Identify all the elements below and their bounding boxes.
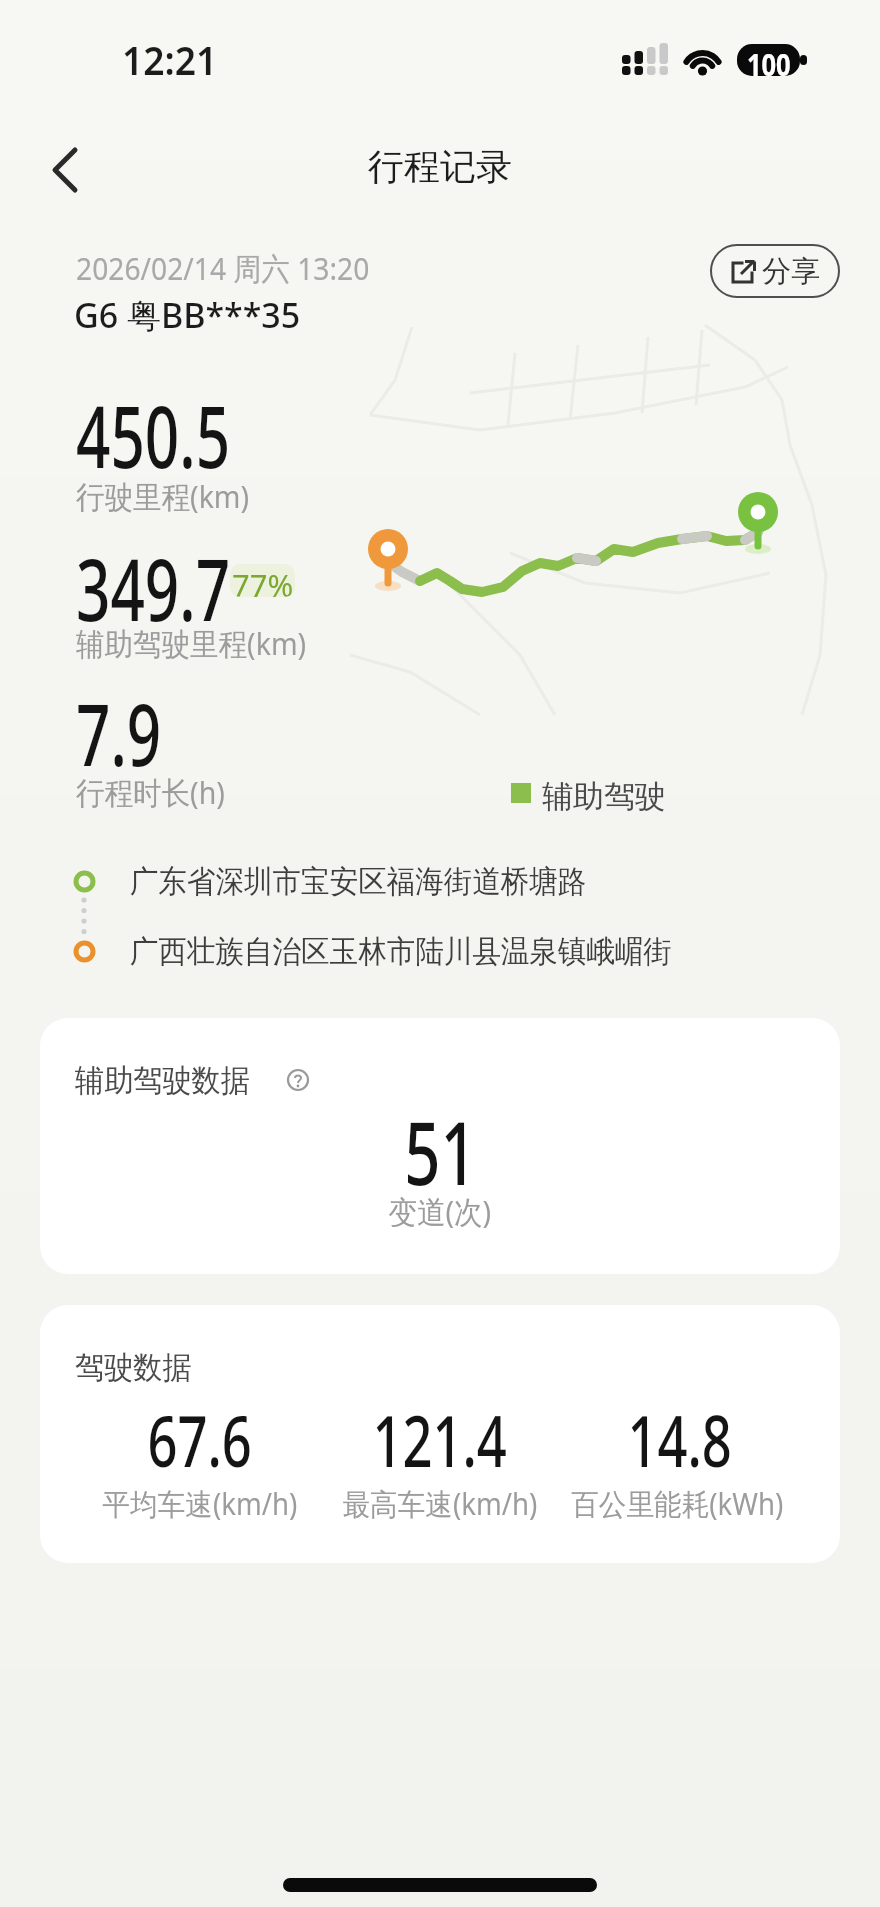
button[interactable]: 分享 — [710, 244, 840, 298]
staticText: 辅助驾驶 — [542, 777, 666, 816]
staticText: 2026/02/14 周六 13:20 — [76, 247, 370, 289]
staticText: 100 — [747, 44, 791, 76]
staticText: 辅助驾驶数据 — [75, 1061, 250, 1100]
staticText: 121.4 — [372, 1392, 507, 1487]
staticText: 变道(次) — [388, 1190, 491, 1232]
staticText: 广西壮族自治区玉林市陆川县温泉镇峨嵋街 — [130, 932, 672, 971]
staticText: 广东省深圳市宝安区福海街道桥塘路 — [130, 862, 586, 901]
staticText: 平均车速(km/h) — [102, 1483, 297, 1524]
staticText: 7.9 — [76, 674, 161, 791]
staticText: 百公里能耗(kWh) — [571, 1483, 784, 1524]
staticText: 驾驶数据 — [75, 1348, 192, 1387]
staticText: 67.6 — [147, 1392, 252, 1487]
staticText: G6 粤BB***35 — [74, 292, 301, 338]
staticText: 14.8 — [627, 1392, 732, 1487]
staticText: 分享 — [762, 253, 820, 290]
button[interactable]: 辅助驾驶数据 — [40, 1018, 840, 1274]
staticText: 349.7 — [76, 529, 231, 646]
staticText: 行程记录 — [368, 144, 512, 189]
staticText: 12:21 — [122, 32, 218, 86]
staticText: 最高车速(km/h) — [342, 1483, 537, 1524]
staticText: 450.5 — [76, 376, 231, 493]
staticText: 77% — [232, 564, 294, 597]
staticText: 51 — [404, 1091, 477, 1211]
button[interactable] — [36, 134, 96, 198]
button[interactable]: 驾驶数据 — [40, 1305, 840, 1563]
staticText: 行驶里程(km) — [76, 475, 250, 517]
staticText: 行程时长(h) — [76, 771, 225, 813]
staticText: 辅助驾驶里程(km) — [76, 622, 307, 664]
